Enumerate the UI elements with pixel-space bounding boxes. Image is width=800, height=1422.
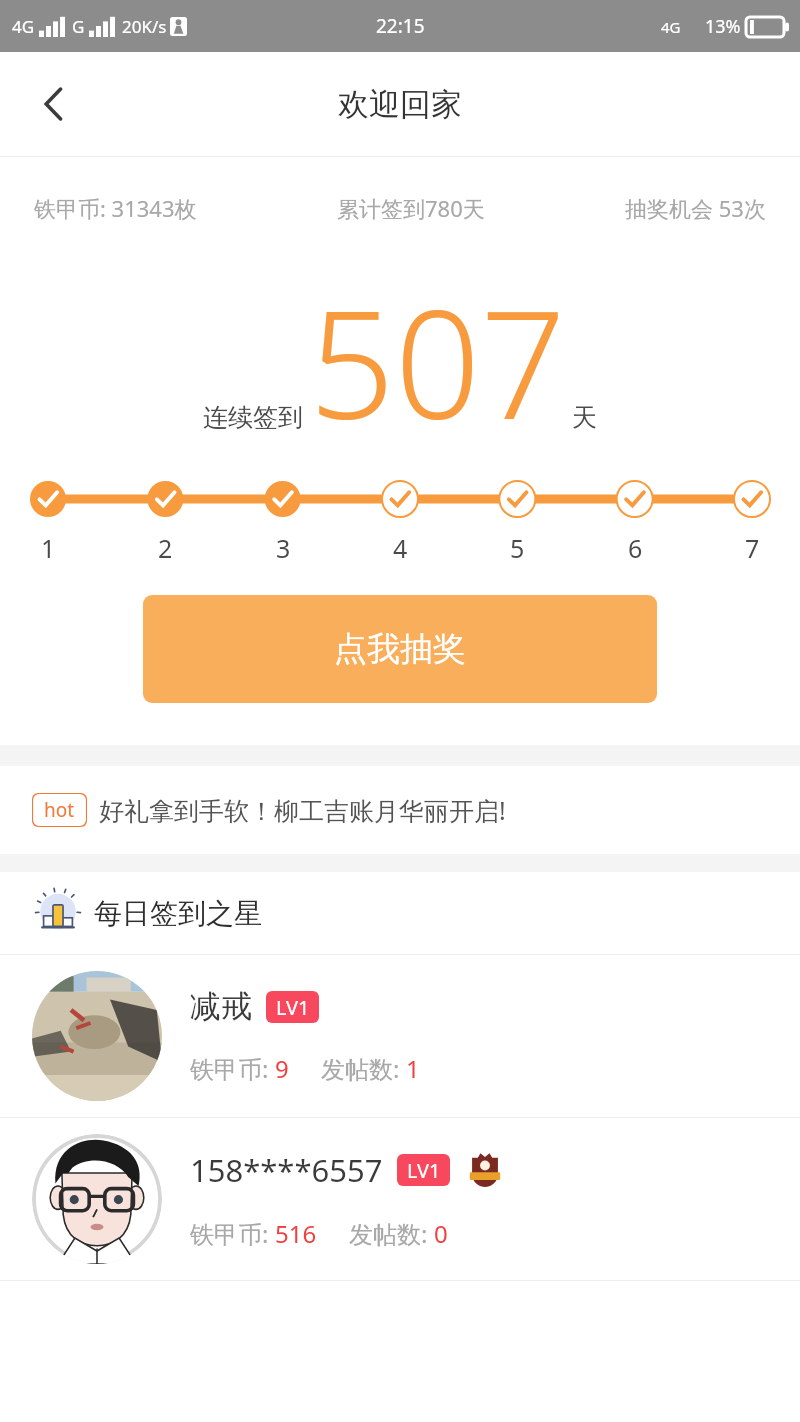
button[interactable]: 点我抽奖: [143, 595, 657, 703]
staticText: 22:15: [376, 13, 425, 39]
staticText: LV1: [276, 994, 310, 1021]
staticText: 铁甲币: 31343枚: [34, 193, 197, 223]
staticText: 6: [628, 531, 643, 565]
staticText: 4G: [661, 17, 681, 37]
staticText: 1: [41, 531, 56, 565]
staticText: 连续签到: [203, 402, 303, 433]
staticText: 20K/s: [122, 15, 167, 38]
staticText: 每日签到之星: [94, 896, 262, 931]
staticText: LV1: [407, 1157, 441, 1184]
staticText: 欢迎回家: [338, 85, 462, 124]
staticText: 4: [393, 531, 408, 565]
staticText: 13%: [705, 14, 741, 39]
button[interactable]: 158****6557: [0, 1118, 800, 1280]
staticText: 点我抽奖: [334, 628, 466, 670]
staticText: 铁甲币:: [190, 1217, 275, 1250]
button[interactable]: 每日签到之星: [0, 872, 800, 954]
staticText: 4G: [12, 15, 35, 38]
button[interactable]: hot: [0, 766, 800, 854]
staticText: 减戒: [190, 987, 252, 1026]
staticText: 累计签到780天: [337, 193, 485, 223]
staticText: 好礼拿到手软！柳工吉账月华丽开启!: [99, 793, 506, 827]
staticText: 9: [275, 1052, 289, 1085]
staticText: 天: [572, 402, 597, 433]
staticText: hot: [44, 797, 75, 823]
staticText: 抽奖机会 53次: [625, 193, 766, 223]
staticText: 7: [745, 531, 760, 565]
staticText: 3: [276, 531, 291, 565]
staticText: 铁甲币:: [190, 1052, 275, 1085]
staticText: 1: [406, 1052, 420, 1085]
staticText: G: [72, 15, 85, 38]
staticText: 2: [158, 531, 173, 565]
button[interactable]: Back: [26, 76, 82, 132]
staticText: 516: [275, 1217, 317, 1250]
staticText: 0: [434, 1217, 448, 1250]
staticText: 507: [309, 259, 566, 459]
staticText: 158****6557: [190, 1149, 383, 1191]
staticText: 发帖数:: [349, 1217, 434, 1250]
button[interactable]: 减戒: [0, 955, 800, 1117]
staticText: 5: [510, 531, 525, 565]
staticText: 发帖数:: [321, 1052, 406, 1085]
